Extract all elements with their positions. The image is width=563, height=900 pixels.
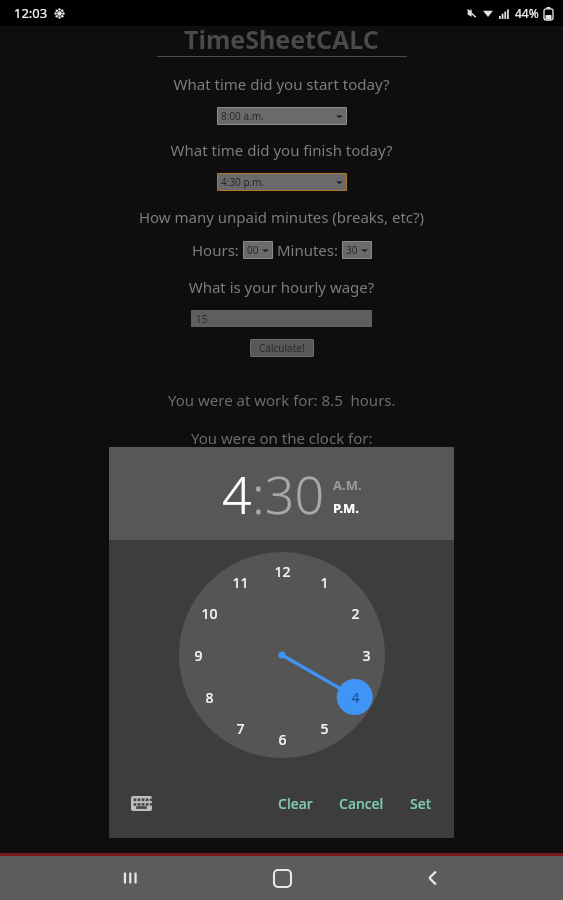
staticText: 30 [346,243,361,257]
staticText: 4 [351,688,360,707]
button[interactable]: 8:00 a.m. [217,107,347,125]
button[interactable]: A.M. [333,476,362,494]
staticText: Clear [278,794,313,813]
button[interactable]: 4 [222,458,252,529]
staticText: 6 [278,730,287,749]
staticText: Hours: [192,240,243,260]
staticText: A.M. [333,476,362,494]
staticText: Set [410,794,432,813]
button[interactable]: Home [260,856,304,900]
staticText: P.M. [333,499,359,517]
button[interactable]: 4:30 p.m. [217,173,347,191]
staticText: Cancel [339,794,384,813]
staticText: What time did you finish today? [0,140,563,160]
button[interactable]: 00 [243,241,273,259]
staticText: TimeSheetCALC [184,22,379,56]
staticText: 7 [236,719,245,738]
staticText: 11 [232,573,249,592]
staticText: Minutes: [273,240,342,260]
staticText: 10 [201,604,218,623]
staticText: 2 [351,604,360,623]
staticText: 44% [515,5,539,21]
button[interactable]: 12 [179,552,385,758]
staticText: 15 [196,312,208,326]
staticText: 12:03 [14,4,48,22]
button[interactable]: Calculate! [250,339,314,357]
button[interactable]: Clear [265,786,326,821]
staticText: 4:30 p.m. [221,175,336,189]
staticText: How many unpaid minutes (breaks, etc?) [0,207,563,227]
button[interactable]: 15 [191,310,372,327]
staticText: 4 [222,458,252,529]
staticText: What time did you start today? [0,74,563,94]
staticText: 8 [205,688,214,707]
staticText: 1 [320,573,329,592]
button[interactable]: Cancel [326,786,397,821]
button[interactable]: P.M. [333,499,359,517]
button[interactable]: Recent apps [108,856,152,900]
button[interactable]: :30 [252,458,325,529]
staticText: 5 [320,719,329,738]
staticText: Calculate! [259,341,305,355]
button[interactable]: Set [397,786,445,821]
button[interactable]: 30 [342,241,372,259]
staticText: You were at work for: 8.5 hours. [168,390,396,410]
button[interactable]: Switch to keyboard input [128,790,154,816]
staticText: What is your hourly wage? [0,277,563,297]
staticText: 00 [247,243,262,257]
staticText: You were on the clock for: [191,428,373,448]
button[interactable]: Back [411,856,455,900]
staticText: 12 [274,562,291,581]
staticText: 3 [362,646,371,665]
staticText: :30 [252,458,325,529]
staticText: 9 [194,646,203,665]
staticText: 8:00 a.m. [221,109,336,123]
